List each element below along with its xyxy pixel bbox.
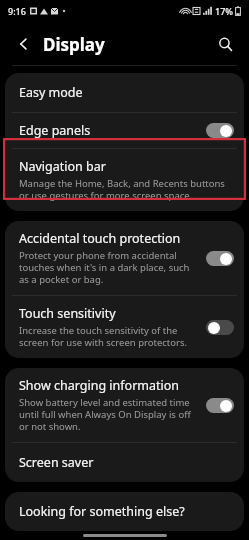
button[interactable]: On: [206, 251, 234, 266]
staticText: Manage the Home, Back, and Recents butto…: [19, 177, 230, 202]
button[interactable]: Touch sensitivity: [5, 296, 244, 358]
staticText: Show battery level and estimated time un…: [19, 396, 198, 433]
button[interactable]: Screen saver: [5, 443, 244, 482]
staticText: Edge panels: [19, 122, 91, 139]
button[interactable]: Navigation bar: [5, 149, 244, 211]
staticText: Protect your phone from accidental touch…: [19, 249, 198, 286]
staticText: Navigation bar: [19, 158, 106, 175]
button[interactable]: Show charging information: [5, 368, 244, 442]
button[interactable]: On: [206, 398, 234, 413]
staticText: Display: [43, 33, 105, 56]
button[interactable]: Off: [206, 320, 234, 335]
staticText: Show charging information: [19, 377, 180, 394]
staticText: Easy mode: [19, 84, 83, 101]
button[interactable]: Edge panels: [5, 113, 244, 148]
button[interactable]: Accidental touch protection: [5, 221, 244, 295]
button[interactable]: Looking for something else?: [5, 492, 244, 531]
button[interactable]: On: [206, 123, 234, 138]
button[interactable]: Search: [210, 29, 240, 59]
staticText: Looking for something else?: [19, 503, 185, 520]
staticText: 9:16: [8, 5, 26, 17]
staticText: Screen saver: [19, 454, 94, 471]
staticText: Increase the touch sensitivity of the sc…: [19, 324, 198, 349]
button[interactable]: Back: [9, 29, 39, 59]
staticText: Touch sensitivity: [19, 305, 116, 322]
staticText: 17%: [215, 5, 233, 17]
button[interactable]: Easy mode: [5, 73, 244, 112]
staticText: Accidental touch protection: [19, 230, 181, 247]
